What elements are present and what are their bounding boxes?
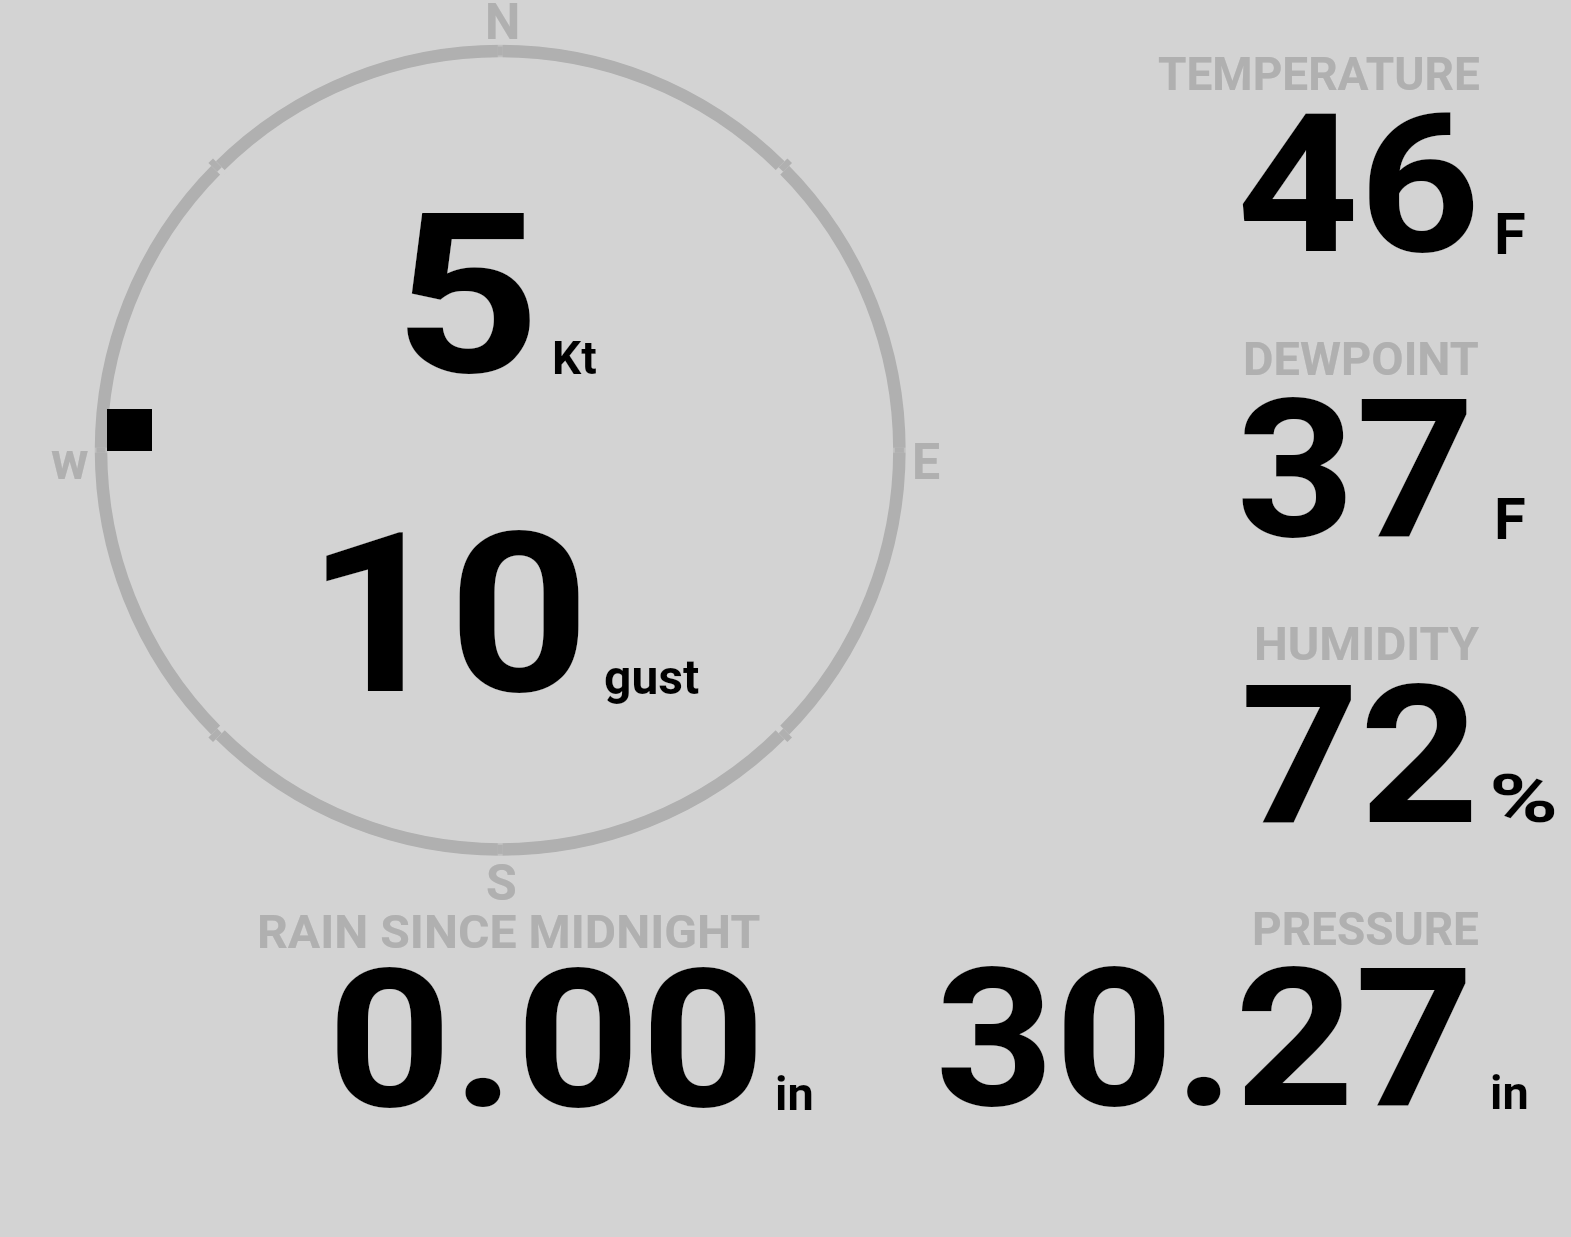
staticText: F (1494, 485, 1526, 553)
staticText: Kt (552, 331, 597, 385)
button[interactable]: Pressure 30.27 in (900, 895, 1520, 1125)
staticText: S (486, 854, 517, 913)
button[interactable]: Temperature 46 F (1150, 40, 1571, 270)
staticText: DEWPOINT (1243, 332, 1480, 386)
button[interactable]: Rain since midnight 0.00 in (250, 895, 830, 1125)
staticText: 46 (1237, 72, 1481, 298)
staticText: 5 (394, 165, 541, 426)
button[interactable]: Wind direction compass, 5 knots gusting … (95, 45, 907, 857)
staticText: in (775, 1066, 814, 1121)
staticText: RAIN SINCE MIDNIGHT (257, 905, 761, 959)
staticText: TEMPERATURE (1158, 47, 1480, 101)
staticText: in (1490, 1065, 1529, 1120)
staticText: 72 (1240, 643, 1480, 869)
staticText: gust (604, 649, 700, 705)
button[interactable]: Humidity 72 percent (1150, 610, 1571, 840)
staticText: E (912, 433, 941, 492)
staticText: PRESSURE (1252, 902, 1479, 956)
staticText: w (51, 432, 89, 492)
staticText: F (1494, 200, 1526, 268)
button[interactable]: Dewpoint 37 F (1150, 325, 1571, 555)
staticText: 10 (306, 484, 590, 745)
staticText: 37 (1236, 357, 1476, 583)
staticText: 0.00 (327, 927, 767, 1153)
staticText: % (1489, 761, 1559, 838)
staticText: 30.27 (935, 926, 1475, 1152)
staticText: HUMIDITY (1254, 617, 1480, 671)
staticText: N (485, 0, 521, 52)
